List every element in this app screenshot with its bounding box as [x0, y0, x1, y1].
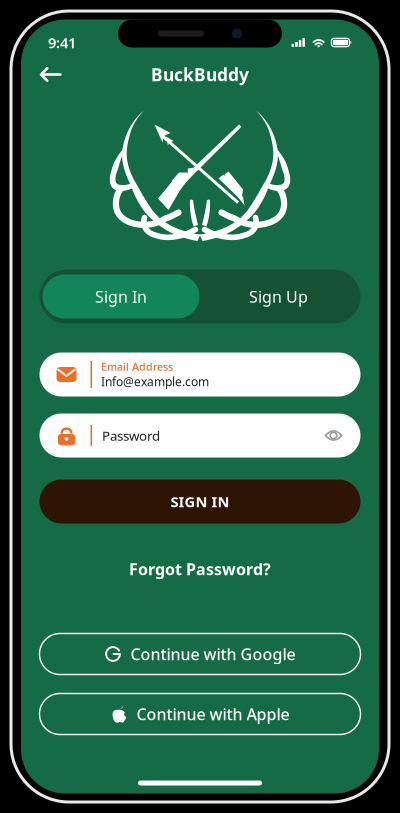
button[interactable]: SIGN IN [39, 479, 360, 523]
button[interactable]: Continue with Apple [39, 693, 360, 734]
button[interactable]: Show password [324, 428, 360, 442]
staticText: Password [102, 427, 160, 444]
button[interactable]: Sign In [42, 274, 199, 318]
button[interactable]: Forgot Password? [119, 553, 281, 585]
staticText: Continue with Google [130, 643, 295, 665]
button[interactable]: Back [34, 58, 67, 91]
button[interactable]: Continue with Google [39, 633, 360, 674]
staticText: Email Address [101, 359, 173, 374]
staticText: Forgot Password? [129, 558, 271, 580]
staticText: BuckBuddy [151, 63, 249, 86]
button[interactable]: Sign Up [199, 274, 357, 318]
staticText: Continue with Apple [136, 703, 289, 725]
staticText: Sign Up [249, 286, 308, 307]
staticText: 9:41 [48, 33, 76, 52]
staticText: SIGN IN [170, 492, 229, 511]
staticText: Info@example.com [101, 374, 209, 389]
staticText: Sign In [95, 286, 147, 307]
